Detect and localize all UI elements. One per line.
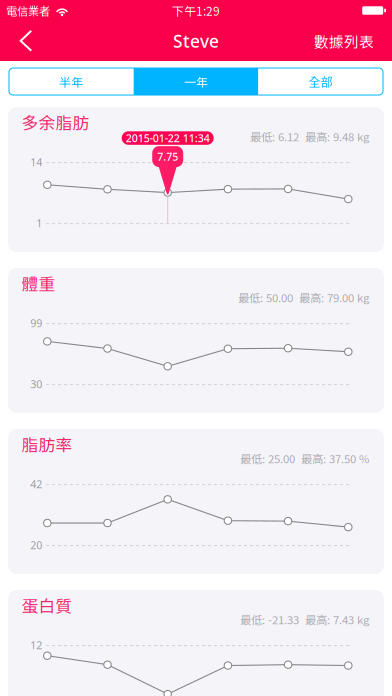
- staticText: 7.75: [157, 149, 178, 164]
- button[interactable]: 脂肪率: [8, 429, 384, 574]
- button[interactable]: 數據列表: [305, 21, 383, 61]
- staticText: 體重: [21, 271, 55, 295]
- staticText: 30: [30, 377, 42, 391]
- staticText: 42: [30, 477, 42, 491]
- staticText: 1: [36, 216, 42, 230]
- button[interactable]: 半年: [9, 68, 134, 95]
- staticText: 最低: 50.00 最高: 79.00 kg: [238, 289, 369, 305]
- staticText: 脂肪率: [21, 432, 72, 456]
- staticText: Steve: [173, 29, 219, 52]
- button[interactable]: 蛋白質: [8, 590, 384, 696]
- staticText: 蛋白質: [21, 593, 72, 617]
- staticText: 全部: [309, 73, 333, 90]
- staticText: 12: [30, 638, 42, 652]
- staticText: 一年: [184, 73, 208, 90]
- button[interactable]: 一年: [134, 68, 258, 95]
- staticText: 最低: 25.00 最高: 37.50 %: [240, 450, 369, 466]
- button[interactable]: 多余脂肪: [8, 107, 384, 252]
- staticText: 半年: [59, 73, 83, 90]
- staticText: 電信業者: [6, 2, 50, 19]
- button[interactable]: Back: [0, 21, 44, 61]
- button[interactable]: 體重: [8, 268, 384, 413]
- staticText: 下午1:29: [172, 2, 220, 19]
- staticText: 多余脂肪: [21, 110, 89, 134]
- staticText: 14: [30, 155, 42, 169]
- staticText: 20: [30, 538, 42, 552]
- staticText: 數據列表: [314, 30, 374, 52]
- button[interactable]: 全部: [258, 68, 383, 95]
- staticText: 最低: 6.12 最高: 9.48 kg: [250, 128, 369, 144]
- staticText: 99: [30, 316, 42, 330]
- staticText: 最低: -21.33 最高: 7.43 kg: [240, 611, 369, 627]
- staticText: 2015-01-22 11:34: [126, 131, 210, 145]
